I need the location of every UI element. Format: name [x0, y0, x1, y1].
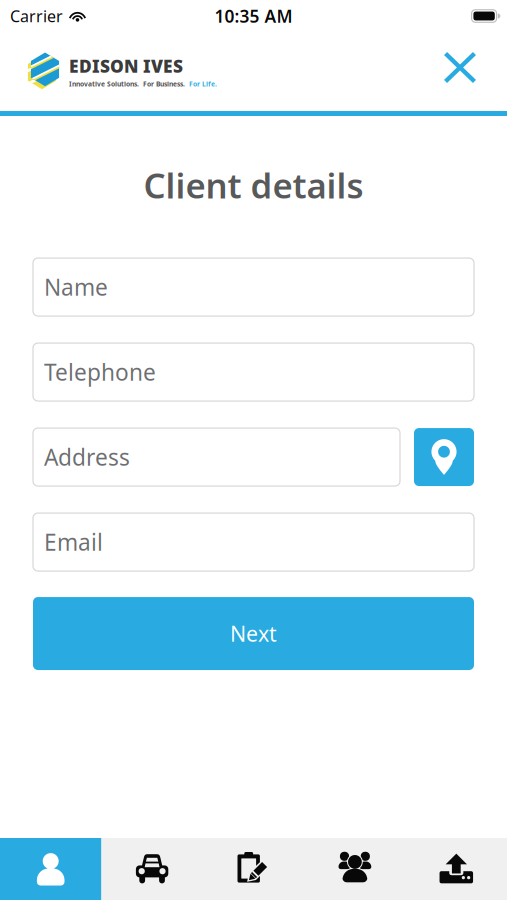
- button[interactable]: Team: [304, 838, 406, 900]
- staticText: 10:35 AM: [214, 4, 292, 27]
- staticText: Next: [230, 619, 277, 648]
- button[interactable]: Email: [33, 513, 474, 571]
- button[interactable]: Vehicle: [101, 838, 203, 900]
- staticText: Address: [44, 442, 130, 472]
- button[interactable]: Close: [432, 44, 488, 99]
- button[interactable]: Client details: [0, 838, 101, 900]
- button[interactable]: Job sheet: [203, 838, 304, 900]
- staticText: EDISON IVES: [69, 55, 183, 78]
- button[interactable]: Next: [33, 597, 474, 670]
- staticText: Telephone: [44, 357, 156, 387]
- staticText: Email: [44, 527, 103, 557]
- button[interactable]: Telephone: [33, 343, 474, 401]
- button[interactable]: Name: [33, 258, 474, 316]
- staticText: Innovative Solutions. For Business.: [69, 80, 189, 88]
- staticText: Client details: [143, 162, 363, 208]
- staticText: For Life.: [189, 80, 217, 88]
- staticText: Carrier: [10, 5, 63, 27]
- staticText: Name: [44, 272, 108, 302]
- button[interactable]: Address: [33, 428, 400, 486]
- button[interactable]: Upload: [406, 838, 507, 900]
- button[interactable]: Find address on map: [414, 428, 474, 486]
